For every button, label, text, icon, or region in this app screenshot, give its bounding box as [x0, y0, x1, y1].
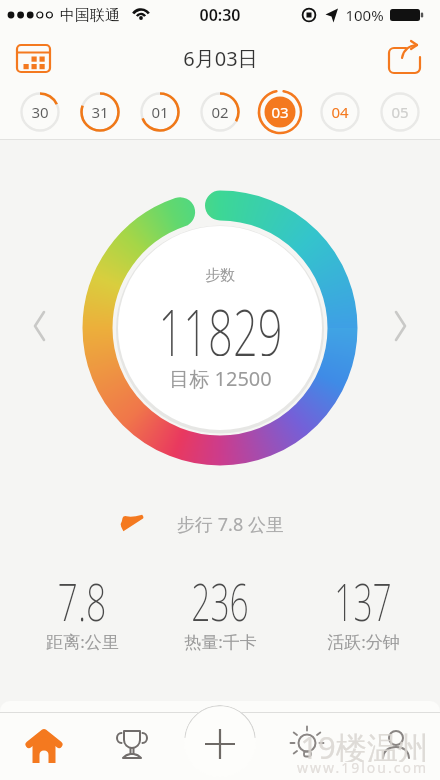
staticText: 步行 7.8 公里: [177, 512, 284, 536]
staticText: 6月03日: [183, 45, 258, 72]
staticText: 热量:千卡: [184, 630, 257, 652]
staticText: 03: [271, 102, 289, 122]
staticText: 中国联通: [60, 6, 120, 25]
button[interactable]: [384, 40, 428, 80]
staticText: 02: [211, 102, 229, 122]
button[interactable]: [10, 38, 54, 78]
staticText: 31: [91, 102, 109, 122]
staticText: 30: [31, 102, 49, 122]
button[interactable]: 01: [137, 89, 183, 135]
button[interactable]: 31: [77, 89, 123, 135]
staticText: www.19lou.com: [297, 758, 428, 777]
staticText: 236: [191, 566, 249, 622]
staticText: 04: [331, 102, 349, 122]
button[interactable]: 30: [17, 89, 63, 135]
staticText: 05: [391, 102, 409, 122]
button[interactable]: 05: [377, 89, 423, 135]
button[interactable]: [368, 718, 424, 774]
button[interactable]: [184, 705, 256, 777]
button[interactable]: [16, 718, 72, 774]
staticText: 01: [151, 102, 169, 122]
button[interactable]: 04: [317, 89, 363, 135]
staticText: 00:30: [199, 4, 241, 26]
staticText: 目标 12500: [169, 365, 272, 391]
button[interactable]: [104, 718, 160, 774]
staticText: 137: [334, 566, 392, 622]
staticText: 100%: [345, 5, 384, 25]
button[interactable]: [280, 718, 336, 774]
staticText: 11829: [158, 288, 283, 356]
staticText: 步数: [205, 266, 235, 285]
staticText: 距离:公里: [46, 630, 119, 652]
staticText: 7.8: [57, 566, 106, 622]
button[interactable]: 03: [257, 89, 303, 135]
button[interactable]: 02: [197, 89, 243, 135]
staticText: 19楼温州: [300, 726, 429, 762]
staticText: 活跃:分钟: [327, 630, 400, 652]
